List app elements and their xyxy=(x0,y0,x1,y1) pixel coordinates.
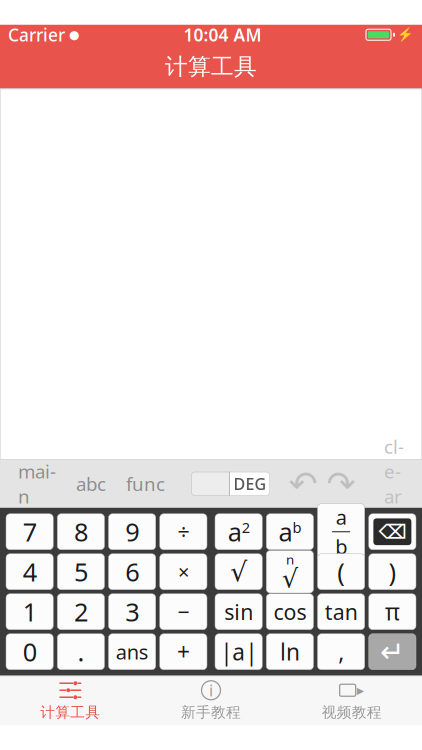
staticText: tan xyxy=(325,598,358,626)
staticText: 3 xyxy=(125,595,139,628)
button[interactable]: tan xyxy=(317,594,365,630)
button[interactable]: a xyxy=(317,514,365,550)
button[interactable]: 1 xyxy=(6,594,53,630)
button[interactable]: 计算工具 xyxy=(0,676,141,725)
staticText: DEG xyxy=(233,473,266,494)
button[interactable]: 6 xyxy=(108,554,156,590)
button[interactable]: 9 xyxy=(108,514,156,550)
staticText: main xyxy=(18,459,56,509)
staticText: ● xyxy=(65,28,79,41)
staticText: ↷ xyxy=(326,464,355,503)
staticText: √ xyxy=(282,564,298,593)
staticText: ↵ xyxy=(380,635,405,668)
staticText: a xyxy=(336,504,347,530)
staticText: b xyxy=(335,533,347,560)
button[interactable]: 2 xyxy=(57,594,104,630)
staticText: ↶ xyxy=(288,464,317,503)
staticText: 4 xyxy=(23,555,37,588)
staticText: |a| xyxy=(220,637,257,667)
button[interactable]: n xyxy=(266,554,313,590)
staticText: 6 xyxy=(125,555,139,588)
staticText: 5 xyxy=(74,555,88,588)
button[interactable]: 0 xyxy=(6,634,53,670)
button[interactable]: ÷ xyxy=(160,514,207,550)
staticText: × xyxy=(178,558,189,585)
button[interactable]: func xyxy=(116,468,175,500)
button[interactable]: i xyxy=(141,676,281,725)
staticText: Carrier xyxy=(8,23,65,46)
button[interactable]: a xyxy=(215,514,262,550)
staticText: . xyxy=(77,635,84,668)
button[interactable]: |a| xyxy=(215,634,262,670)
button[interactable]: ⌫ xyxy=(369,514,416,550)
staticText: 新手教程 xyxy=(181,703,241,721)
staticText: n xyxy=(286,550,294,568)
staticText: 2 xyxy=(74,595,88,628)
button[interactable]: + xyxy=(160,634,207,670)
button[interactable]: 7 xyxy=(6,514,53,550)
staticText: clear all xyxy=(384,434,404,533)
staticText: , xyxy=(338,637,344,667)
staticText: 7 xyxy=(23,515,37,548)
staticText: ⚡ xyxy=(397,27,414,42)
staticText: ÷ xyxy=(177,518,189,546)
button[interactable]: Undo xyxy=(284,469,322,499)
staticText: 计算工具 xyxy=(165,53,257,81)
staticText: sin xyxy=(224,598,253,626)
button[interactable]: ( xyxy=(317,554,365,590)
staticText: 2 xyxy=(242,517,250,537)
staticText: a xyxy=(228,515,242,548)
staticText: 计算工具 xyxy=(40,703,100,721)
button[interactable]: ↵ xyxy=(369,634,416,670)
button[interactable]: cos xyxy=(266,594,313,630)
button[interactable]: abc xyxy=(66,468,116,500)
staticText: cos xyxy=(273,598,306,626)
button[interactable]: 4 xyxy=(6,554,53,590)
button[interactable]: sin xyxy=(215,594,262,630)
staticText: 8 xyxy=(74,515,88,548)
staticText: abc xyxy=(76,471,106,496)
staticText: ⌫ xyxy=(378,520,406,543)
button[interactable]: . xyxy=(57,634,104,670)
staticText: π xyxy=(385,597,400,627)
staticText: ans xyxy=(116,638,149,665)
staticText: 10:04 AM xyxy=(183,23,261,46)
button[interactable]: clear all xyxy=(374,468,414,500)
staticText: ( xyxy=(337,555,345,588)
staticText: 9 xyxy=(125,515,139,548)
button[interactable]: − xyxy=(160,594,207,630)
staticText: b xyxy=(292,517,301,537)
button[interactable]: √ xyxy=(215,554,262,590)
button[interactable]: ans xyxy=(108,634,156,670)
staticText: func xyxy=(126,471,165,496)
button[interactable]: ln xyxy=(266,634,313,670)
button[interactable]: 8 xyxy=(57,514,104,550)
button[interactable]: 5 xyxy=(57,554,104,590)
button[interactable]: Redo xyxy=(322,469,360,499)
staticText: i xyxy=(209,680,213,701)
staticText: 1 xyxy=(23,595,37,628)
button[interactable]: , xyxy=(317,634,365,670)
button[interactable]: ▸ xyxy=(281,676,422,725)
staticText: √ xyxy=(230,557,247,587)
button[interactable]: 3 xyxy=(108,594,156,630)
staticText: 视频教程 xyxy=(322,703,382,721)
button[interactable]: Angle unit DEG xyxy=(191,472,270,496)
staticText: + xyxy=(177,637,190,667)
staticText: − xyxy=(177,598,189,626)
button[interactable]: main xyxy=(8,468,66,500)
staticText: ▸ xyxy=(357,682,364,698)
staticText: ln xyxy=(280,637,300,667)
button[interactable]: × xyxy=(160,554,207,590)
staticText: ) xyxy=(388,555,396,588)
staticText: 0 xyxy=(23,635,37,668)
button[interactable]: π xyxy=(369,594,416,630)
staticText: a xyxy=(278,515,292,548)
button[interactable]: ) xyxy=(369,554,416,590)
button[interactable]: a xyxy=(266,514,313,550)
